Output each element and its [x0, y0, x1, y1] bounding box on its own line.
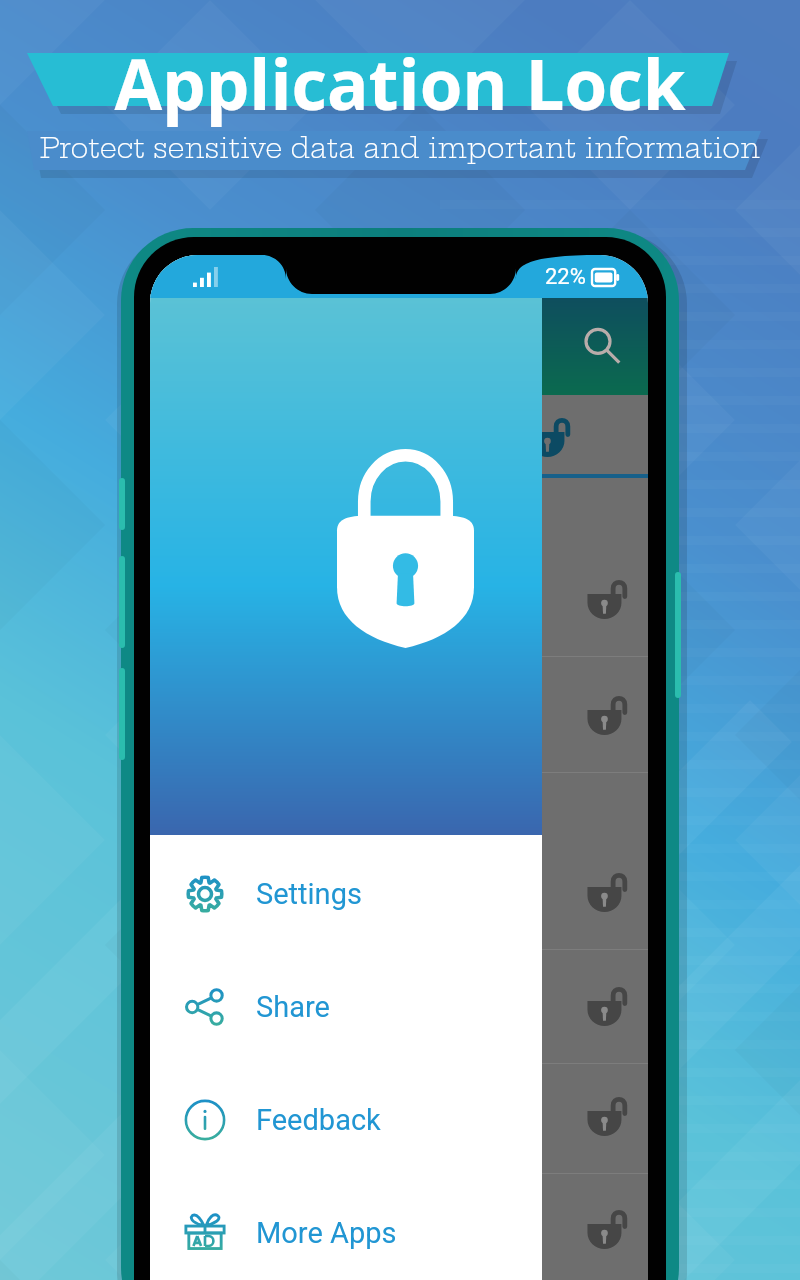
staticText: Protect sensitive data and important inf… — [40, 131, 760, 165]
staticText: Share — [256, 990, 330, 1024]
staticText: Settings — [256, 877, 362, 911]
staticText: More Apps — [256, 1216, 397, 1250]
button[interactable]: Search — [574, 319, 630, 375]
button[interactable]: More Apps — [150, 1176, 542, 1280]
staticText: Feedback — [256, 1103, 381, 1137]
button[interactable]: Settings — [150, 837, 542, 950]
button[interactable]: Feedback — [150, 1063, 542, 1176]
staticText: Application Lock — [114, 36, 686, 130]
staticText: 22% — [545, 264, 586, 290]
button[interactable]: Share — [150, 950, 542, 1063]
